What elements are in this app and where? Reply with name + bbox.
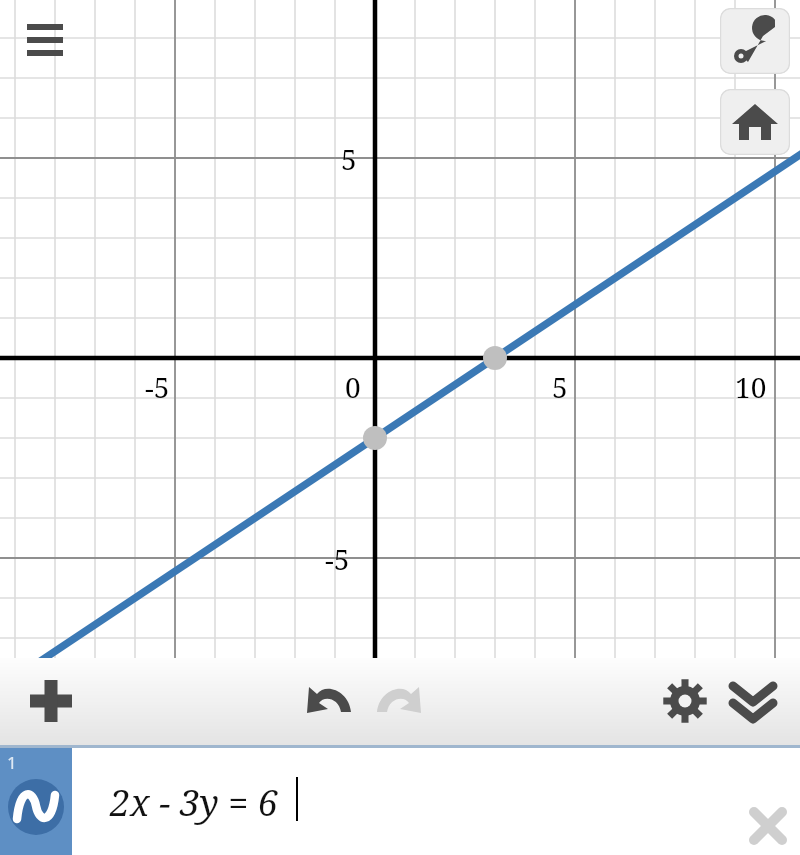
button[interactable]: Undo [297, 668, 363, 734]
staticText: -5 [325, 540, 350, 578]
button[interactable]: Add expression [18, 668, 84, 734]
staticText: 2x − 3y = 6 [110, 778, 278, 827]
button[interactable]: Menu [14, 10, 76, 68]
staticText: 10 [735, 368, 767, 406]
button[interactable]: Delete expression [742, 800, 794, 852]
button[interactable]: Tools [720, 8, 790, 74]
button[interactable]: Collapse keypad [720, 668, 786, 734]
button[interactable]: Expression 1 style [0, 748, 72, 855]
button[interactable]: Home [720, 89, 790, 155]
button[interactable]: Redo [365, 668, 431, 734]
staticText: 5 [341, 140, 357, 178]
button[interactable]: Settings [652, 668, 718, 734]
staticText: 1 [7, 751, 17, 774]
staticText: -5 [145, 368, 170, 406]
staticText: 5 [552, 368, 568, 406]
staticText: 0 [345, 368, 361, 406]
